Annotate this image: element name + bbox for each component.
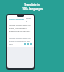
staticText: English (26, 17, 32, 22)
staticText: Translate in (24, 3, 40, 7)
staticText: Lorem ipsum dolor sit amet consectetur e… (9, 37, 32, 46)
staticText: 100+ languages (22, 7, 43, 11)
staticText: Detect language (9, 18, 24, 21)
staticText: Lorem ipsum dolor sit amet, consectetur … (9, 24, 32, 33)
